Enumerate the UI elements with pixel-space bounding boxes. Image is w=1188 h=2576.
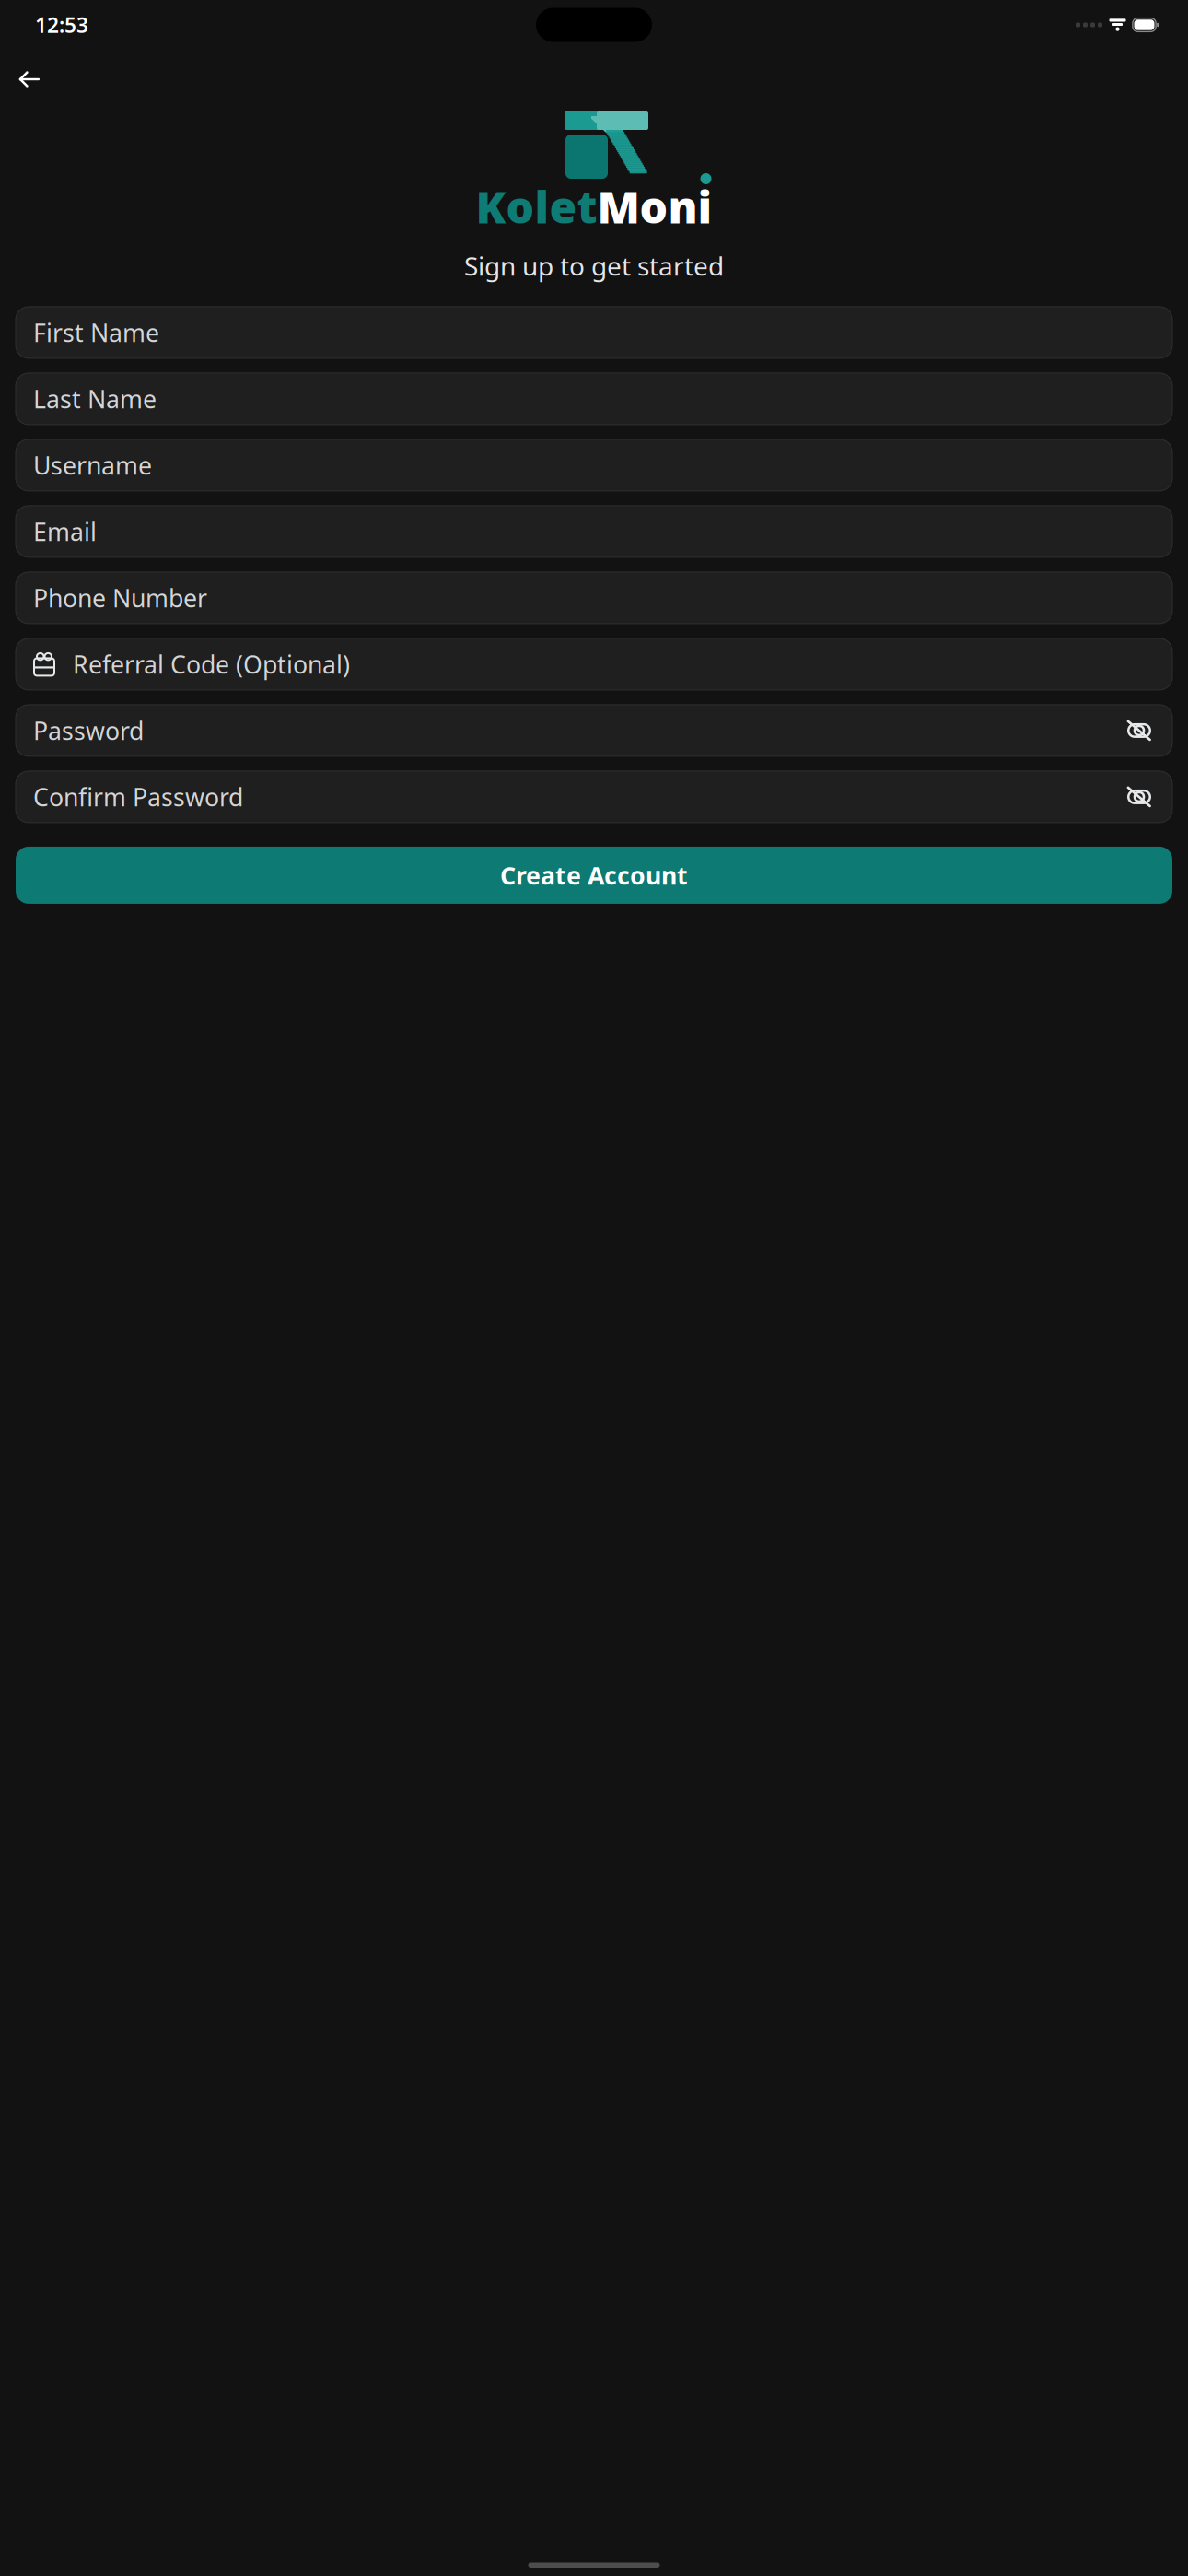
button[interactable]: Back	[9, 59, 50, 100]
staticText: Kolet	[476, 177, 597, 236]
staticText: Referral Code (Optional)	[73, 648, 350, 680]
button[interactable]: Email	[16, 506, 1172, 557]
staticText: 12:53	[35, 11, 88, 39]
button[interactable]: Phone Number	[16, 572, 1172, 624]
staticText: First Name	[33, 316, 159, 349]
staticText: Last Name	[33, 383, 157, 415]
staticText: Password	[33, 714, 144, 747]
button[interactable]: Referral Code (Optional)	[16, 638, 1172, 690]
button[interactable]: Create Account	[16, 847, 1172, 904]
staticText: Create Account	[500, 859, 688, 891]
staticText: Moni	[597, 177, 712, 236]
button[interactable]: Last Name	[16, 373, 1172, 425]
staticText: Confirm Password	[33, 781, 243, 813]
button[interactable]: First Name	[16, 307, 1172, 358]
button[interactable]: Password	[16, 705, 1172, 756]
button[interactable]: Confirm Password	[16, 771, 1172, 823]
staticText: Username	[33, 449, 152, 481]
staticText: Email	[33, 515, 97, 548]
staticText: Sign up to get started	[464, 248, 724, 283]
staticText: Phone Number	[33, 582, 207, 614]
button[interactable]: Username	[16, 439, 1172, 491]
